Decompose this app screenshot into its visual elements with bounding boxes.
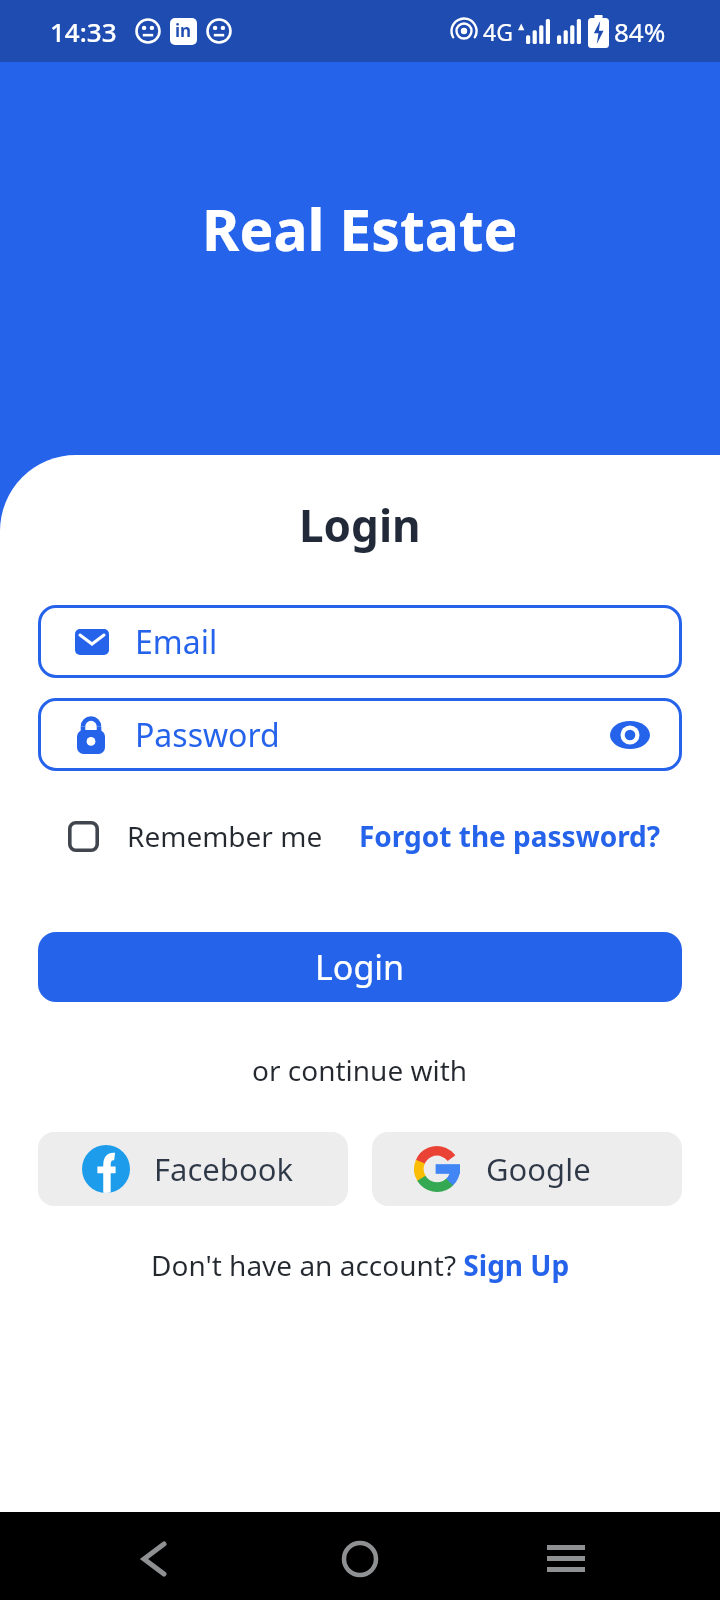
staticText: Don't have an account? Sign Up: [151, 1246, 570, 1284]
button[interactable]: [610, 721, 650, 749]
staticText: Password: [135, 713, 280, 757]
staticText: Login: [299, 495, 421, 555]
button[interactable]: Login: [38, 932, 682, 1002]
staticText: Remember me: [127, 817, 323, 855]
staticText: in: [175, 19, 192, 42]
button[interactable]: [344, 1543, 376, 1575]
staticText: Facebook: [154, 1148, 293, 1190]
staticText: 4G: [483, 16, 513, 47]
staticText: Email: [135, 620, 218, 664]
staticText: Real Estate: [202, 190, 518, 268]
button[interactable]: [140, 1542, 164, 1576]
button[interactable]: Google: [372, 1132, 682, 1206]
button[interactable]: Don't have an account? Sign Up: [0, 1246, 720, 1284]
staticText: Google: [486, 1148, 591, 1190]
staticText: or continue with: [252, 1051, 468, 1089]
button[interactable]: Email: [38, 605, 682, 678]
button[interactable]: Forgot the password?: [359, 817, 661, 855]
staticText: 14:33: [50, 14, 117, 49]
button[interactable]: Facebook: [38, 1132, 348, 1206]
button[interactable]: Password: [38, 698, 682, 771]
button[interactable]: [547, 1545, 585, 1573]
staticText: 84%: [614, 14, 666, 49]
button[interactable]: Remember me: [68, 817, 323, 855]
staticText: Login: [315, 944, 405, 990]
